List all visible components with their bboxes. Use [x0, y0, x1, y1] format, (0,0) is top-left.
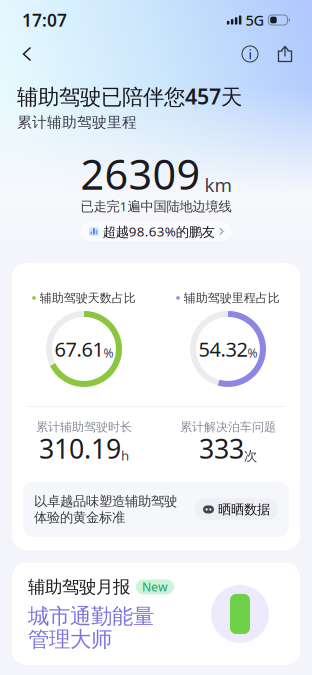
button[interactable]: Back: [14, 41, 40, 67]
staticText: 辅助驾驶里程占比: [184, 291, 280, 305]
staticText: 辅助驾驶天数占比: [40, 291, 136, 305]
staticText: 累计辅助驾驶时长: [36, 420, 132, 434]
staticText: 67.61: [54, 336, 103, 362]
staticText: h: [121, 446, 129, 464]
staticText: i: [248, 45, 251, 63]
staticText: 310.19: [39, 431, 121, 466]
staticText: %: [247, 345, 257, 361]
staticText: 超越98.63%的鹏友: [103, 223, 215, 240]
staticText: 5G: [245, 10, 264, 30]
staticText: New: [142, 579, 168, 595]
button[interactable]: 晒晒数据: [195, 498, 278, 520]
staticText: 已走完1遍中国陆地边境线: [80, 197, 231, 215]
staticText: 城市通勤能量: [28, 603, 154, 629]
staticText: 累计辅助驾驶里程: [17, 113, 137, 131]
button[interactable]: Info: [237, 41, 263, 67]
staticText: 以卓越品味塑造辅助驾驶体验的黄金标准: [34, 493, 177, 526]
staticText: %: [103, 345, 113, 361]
staticText: 次: [244, 448, 257, 464]
staticText: 17:07: [22, 8, 67, 31]
staticText: 晒晒数据: [218, 501, 270, 518]
staticText: 辅助驾驶已陪伴您457天: [17, 82, 242, 110]
staticText: 辅助驾驶月报: [28, 576, 130, 598]
staticText: 54.32: [198, 336, 247, 362]
staticText: 管理大师: [28, 626, 112, 652]
staticText: 333: [199, 431, 244, 466]
button[interactable]: 超越98.63%的鹏友: [80, 222, 232, 241]
staticText: km: [204, 172, 231, 197]
button[interactable]: Share: [272, 41, 298, 67]
button[interactable]: 辅助驾驶月报: [0, 563, 312, 665]
staticText: 累计解决泊车问题: [180, 420, 276, 434]
staticText: 26309: [80, 146, 200, 201]
